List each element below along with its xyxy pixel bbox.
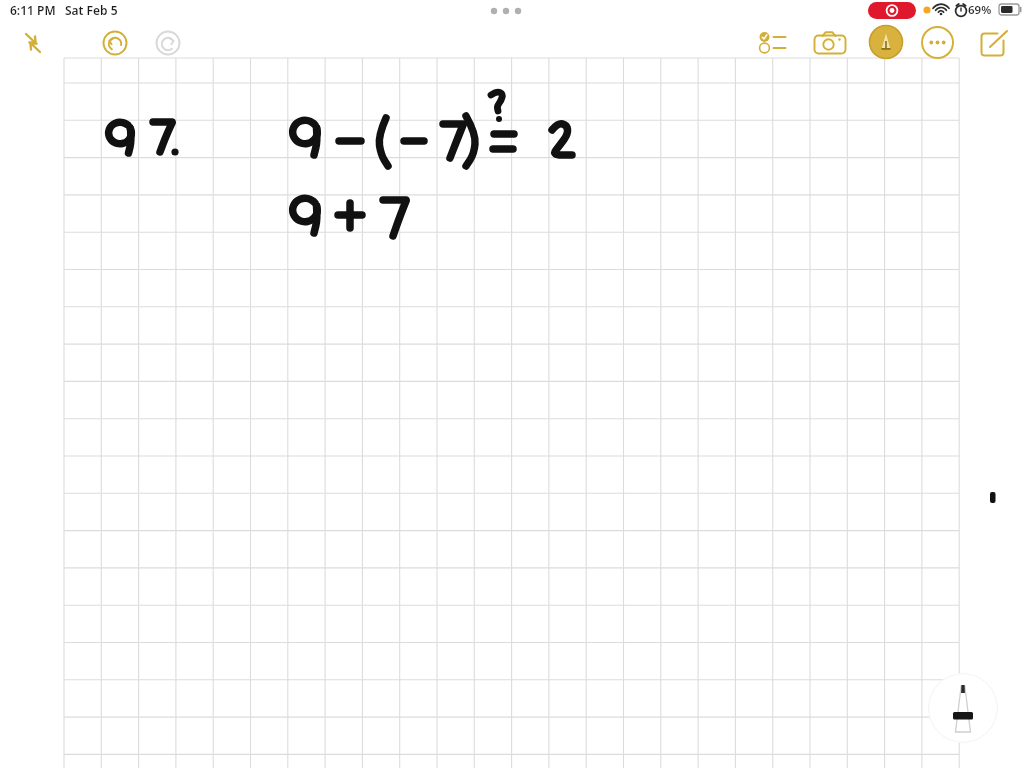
button[interactable]: Insert photo: [812, 26, 850, 64]
staticText: 69%: [968, 2, 992, 18]
button[interactable]: Drawing tools: [928, 673, 998, 743]
staticText: 6:11 PM Sat Feb 5: [10, 2, 118, 18]
button[interactable]: Redo: [150, 25, 186, 61]
button[interactable]: Collapse: [16, 26, 50, 60]
button[interactable]: Checklist: [757, 26, 791, 60]
button[interactable]: Markup: [869, 25, 903, 59]
button[interactable]: New note: [977, 25, 1011, 59]
button[interactable]: More options: [921, 26, 954, 59]
button[interactable]: Undo: [97, 25, 133, 61]
